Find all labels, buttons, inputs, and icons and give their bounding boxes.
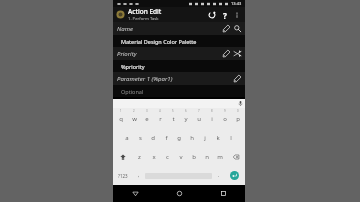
staticText: Parameter 1 (%par1) <box>117 75 232 83</box>
button[interactable]: Material Design Color Palette <box>113 35 245 47</box>
button[interactable]: Edit parameter 1 <box>232 73 243 84</box>
button[interactable]: b <box>188 147 200 166</box>
staticText: 0 <box>237 109 239 113</box>
button[interactable]: Reset <box>205 8 219 22</box>
staticText: Action Edit <box>128 7 162 16</box>
button[interactable]: %priority <box>113 60 245 72</box>
button[interactable]: k <box>212 128 224 147</box>
button[interactable]: s <box>134 128 146 147</box>
staticText: f <box>165 134 168 142</box>
button[interactable]: n <box>201 147 213 166</box>
staticText: 3 <box>146 109 148 113</box>
button[interactable]: Help <box>219 9 231 21</box>
button[interactable]: Home <box>157 185 201 202</box>
button[interactable]: m <box>214 147 226 166</box>
staticText: l <box>230 134 232 142</box>
staticText: u <box>197 115 201 123</box>
staticText: Material Design Color Palette <box>121 38 197 45</box>
button[interactable]: d <box>147 128 159 147</box>
button[interactable]: v <box>175 147 187 166</box>
button[interactable]: l <box>225 128 237 147</box>
other: App icon <box>116 10 125 19</box>
staticText: z <box>138 153 141 161</box>
button[interactable]: 9 <box>219 108 231 128</box>
button[interactable]: Priority <box>113 47 245 60</box>
staticText: 6 <box>185 109 187 113</box>
button[interactable]: 5 <box>167 108 179 128</box>
staticText: p <box>236 115 240 123</box>
staticText: 7 <box>198 109 200 113</box>
staticText: 1. Perform Task <box>128 16 159 22</box>
button[interactable]: c <box>161 147 174 166</box>
button[interactable]: ?123 <box>114 167 132 184</box>
staticText: e <box>145 115 149 123</box>
button[interactable]: Voice input <box>113 99 245 108</box>
staticText: x <box>152 153 156 161</box>
staticText: , <box>138 172 140 179</box>
button[interactable]: 8 <box>206 108 218 128</box>
button[interactable]: More options <box>231 9 242 20</box>
button[interactable]: Shift <box>114 147 132 166</box>
staticText: c <box>166 153 169 161</box>
staticText: a <box>125 134 129 142</box>
button[interactable]: Parameter 1 (%par1) <box>113 72 245 85</box>
button[interactable]: z <box>133 147 146 166</box>
staticText: k <box>216 134 220 142</box>
button[interactable]: 0 <box>232 108 244 128</box>
button[interactable]: 4 <box>154 108 166 128</box>
staticText: n <box>205 153 209 161</box>
button[interactable]: 6 <box>180 108 192 128</box>
button[interactable]: 1 <box>114 108 127 128</box>
button[interactable]: 2 <box>128 108 140 128</box>
staticText: o <box>223 115 227 123</box>
button[interactable]: j <box>199 128 211 147</box>
staticText: v <box>179 153 183 161</box>
button[interactable]: Recents <box>201 185 245 202</box>
staticText: Name <box>117 25 221 33</box>
staticText: 4 <box>159 109 161 113</box>
staticText: ?123 <box>118 173 128 179</box>
button[interactable]: 3 <box>141 108 153 128</box>
staticText: j <box>204 134 206 142</box>
button[interactable]: Enter <box>225 167 244 184</box>
button[interactable]: Search <box>232 23 243 34</box>
staticText: w <box>132 115 137 123</box>
button[interactable]: Name <box>113 22 245 35</box>
button[interactable]: Edit priority <box>221 48 232 59</box>
button[interactable]: Voice input <box>236 99 245 108</box>
button[interactable]: h <box>186 128 198 147</box>
button[interactable]: 7 <box>193 108 205 128</box>
button[interactable]: g <box>173 128 185 147</box>
staticText: 9 <box>224 109 226 113</box>
staticText: 13:43 <box>231 1 242 6</box>
button[interactable]: App icon <box>113 7 245 22</box>
staticText: h <box>190 134 194 142</box>
button[interactable]: Edit name <box>221 23 232 34</box>
staticText: i <box>211 115 213 123</box>
staticText: g <box>177 134 181 142</box>
staticText: y <box>184 115 188 123</box>
staticText: s <box>139 134 142 142</box>
staticText: . <box>218 172 220 179</box>
staticText: Optional <box>121 88 144 95</box>
button[interactable]: a <box>121 128 133 147</box>
staticText: Priority <box>117 50 221 58</box>
button[interactable]: Back <box>113 185 157 202</box>
button[interactable]: x <box>147 147 160 166</box>
staticText: q <box>119 115 123 123</box>
staticText: 2 <box>133 109 135 113</box>
staticText: 1 <box>120 109 122 113</box>
staticText: r <box>159 115 162 123</box>
staticText: ? <box>223 10 227 21</box>
button[interactable]: Shuffle <box>232 48 243 59</box>
button[interactable]: , <box>133 167 144 184</box>
button[interactable]: Backspace <box>227 147 244 166</box>
staticText: 8 <box>211 109 213 113</box>
staticText: d <box>151 134 155 142</box>
button[interactable]: f <box>160 128 172 147</box>
button[interactable]: . <box>213 167 224 184</box>
staticText: b <box>192 153 196 161</box>
button[interactable]: Optional <box>113 85 245 97</box>
staticText: %priority <box>121 63 145 70</box>
